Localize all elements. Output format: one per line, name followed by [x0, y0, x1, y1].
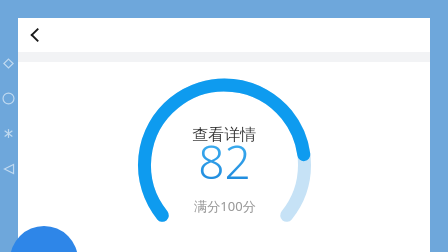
button[interactable]: Back [18, 18, 52, 52]
staticText: 满分100分 [194, 197, 256, 215]
other: Assistant [3, 128, 14, 139]
staticText: 查看详情 [192, 125, 256, 145]
other: Back [3, 163, 15, 175]
other: Home [2, 92, 15, 105]
other: Recents [3, 58, 14, 69]
staticText: 82 [198, 130, 251, 193]
